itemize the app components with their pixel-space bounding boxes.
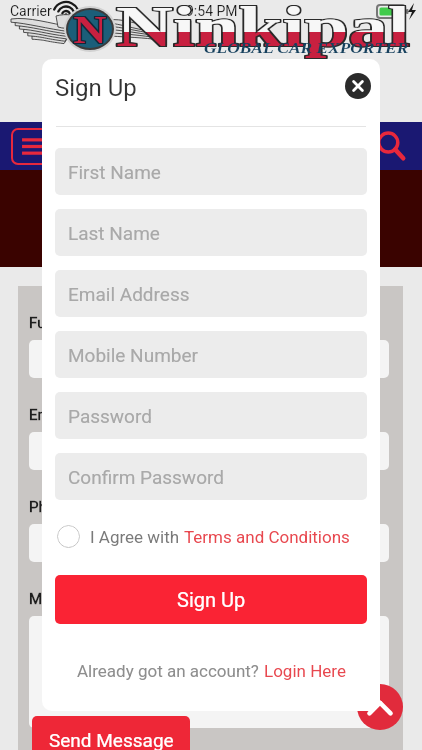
button[interactable]: Password <box>55 392 367 439</box>
staticText: First Name <box>68 161 161 183</box>
staticText: Sign Up <box>55 74 137 102</box>
button[interactable] <box>29 340 389 378</box>
button[interactable]: Email Address <box>55 270 367 317</box>
button[interactable]: Search <box>374 129 408 163</box>
staticText: Sign Up <box>177 588 246 611</box>
button[interactable]: I Agree with <box>57 525 350 548</box>
button[interactable] <box>29 616 389 728</box>
staticText: 9:54 PM <box>186 3 238 19</box>
staticText: Terms and Conditions <box>184 527 350 547</box>
staticText: Email <box>29 406 67 424</box>
staticText: Mobile Number <box>68 344 198 366</box>
staticText: Last Name <box>68 222 160 244</box>
staticText: Email Address <box>68 283 190 305</box>
button[interactable]: First Name <box>55 148 367 195</box>
button[interactable]: Scroll to top <box>357 684 403 730</box>
button[interactable]: Login Here <box>264 661 346 681</box>
staticText: Password <box>68 405 152 427</box>
button[interactable]: Last Name <box>55 209 367 256</box>
button[interactable]: Confirm Password <box>55 453 367 500</box>
button[interactable]: Close <box>345 73 371 99</box>
staticText: Already got an account? <box>77 661 264 681</box>
staticText: Send Message <box>49 729 174 750</box>
staticText: I Agree with <box>90 527 184 547</box>
staticText: Carrier <box>10 3 52 19</box>
button[interactable]: Mobile Number <box>55 331 367 378</box>
button[interactable] <box>29 432 389 470</box>
staticText: Full Name <box>29 314 97 332</box>
button[interactable]: Menu <box>11 128 57 165</box>
button[interactable]: Send Message <box>32 716 190 750</box>
button[interactable]: Sign Up <box>55 575 367 624</box>
staticText: Message <box>29 590 91 608</box>
button[interactable] <box>29 524 389 562</box>
staticText: Confirm Password <box>68 466 224 488</box>
staticText: Phone Number <box>29 498 129 516</box>
